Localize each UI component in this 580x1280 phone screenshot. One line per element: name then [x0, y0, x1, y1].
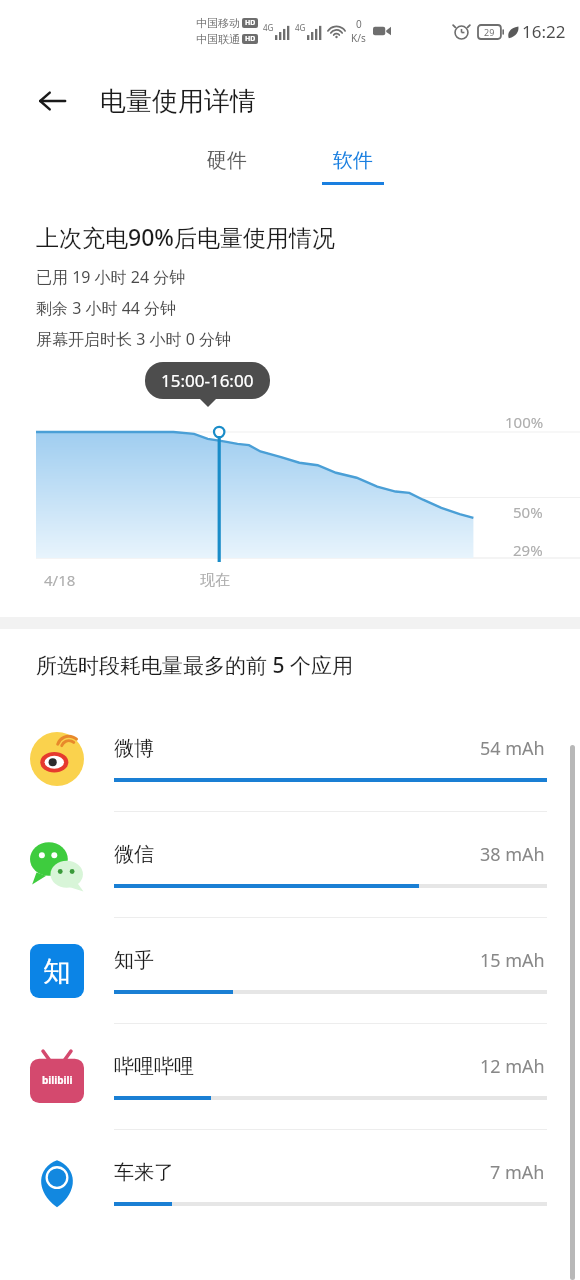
staticText: 4/18 [44, 570, 76, 590]
staticText: 电量使用详情 [100, 85, 256, 118]
staticText: 剩余 3 小时 44 分钟 [36, 297, 177, 319]
staticText: HD [245, 34, 256, 44]
staticText: 车来了 [114, 1160, 174, 1185]
button[interactable]: 微信 [0, 811, 580, 917]
staticText: 已用 19 小时 24 分钟 [36, 266, 186, 288]
staticText: 100% [505, 412, 544, 432]
staticText: 知 [43, 954, 71, 989]
staticText: 29 [484, 26, 495, 38]
staticText: 中国联通 [196, 32, 240, 46]
staticText: 12 mAh [480, 1054, 545, 1079]
staticText: K/s [351, 31, 366, 45]
staticText: 15:00-16:00 [161, 369, 254, 392]
staticText: 4G [295, 22, 306, 33]
staticText: bilibili [42, 1073, 73, 1087]
staticText: 硬件 [207, 148, 247, 173]
staticText: 中国移动 [196, 16, 240, 30]
staticText: 屏幕开启时长 3 小时 0 分钟 [36, 328, 231, 350]
staticText: 微信 [114, 842, 154, 867]
staticText: 4G [263, 22, 274, 33]
staticText: 0 [356, 17, 362, 31]
button[interactable]: bilibili [0, 1023, 580, 1129]
staticText: 知乎 [114, 948, 154, 973]
button[interactable]: 返回 [26, 75, 78, 127]
staticText: 16:22 [522, 20, 566, 43]
staticText: HD [245, 18, 256, 28]
staticText: 微博 [114, 736, 154, 761]
button[interactable]: 知 [0, 917, 580, 1023]
staticText: 所选时段耗电量最多的前 5 个应用 [36, 651, 353, 680]
staticText: 50% [513, 502, 543, 522]
staticText: 哔哩哔哩 [114, 1054, 194, 1079]
staticText: 上次充电90%后电量使用情况 [36, 221, 335, 252]
button[interactable]: 车来了 [0, 1129, 580, 1235]
button[interactable]: 微博 [0, 706, 580, 811]
button[interactable]: 软件 [310, 140, 396, 193]
staticText: 现在 [200, 571, 230, 590]
staticText: 29% [513, 540, 543, 560]
staticText: 软件 [333, 148, 373, 173]
staticText: 38 mAh [480, 842, 545, 867]
button[interactable]: 硬件 [184, 140, 270, 193]
staticText: 7 mAh [490, 1160, 545, 1185]
staticText: 15 mAh [480, 948, 545, 973]
staticText: 54 mAh [480, 736, 545, 761]
